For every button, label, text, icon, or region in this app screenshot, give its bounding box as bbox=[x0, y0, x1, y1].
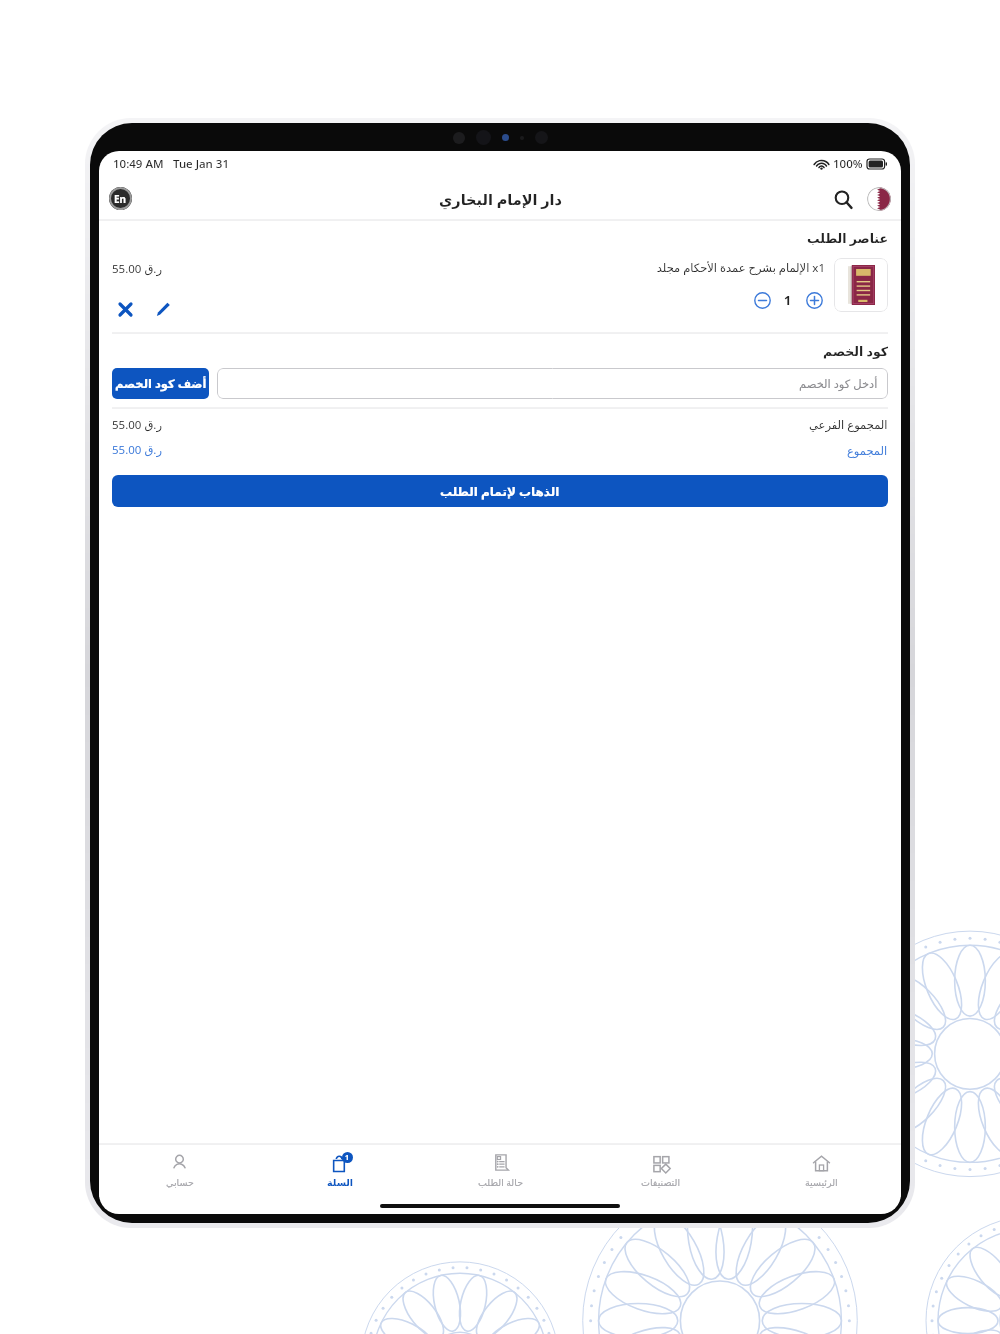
staticText: 10:49 AM bbox=[113, 156, 164, 172]
button[interactable]: حالة الطلب bbox=[421, 1145, 581, 1197]
staticText: أضف كود الخصم bbox=[115, 376, 207, 392]
button[interactable]: Remove item bbox=[112, 296, 138, 322]
staticText: 55.00 ر.ق bbox=[112, 417, 162, 433]
button[interactable]: Decrease quantity bbox=[751, 289, 773, 311]
button[interactable]: أضف كود الخصم bbox=[112, 368, 209, 399]
staticText: En bbox=[114, 192, 127, 206]
button[interactable]: التصنيفات bbox=[581, 1145, 741, 1197]
button[interactable]: Edit item bbox=[150, 296, 176, 322]
staticText: التصنيفات bbox=[641, 1177, 681, 1188]
staticText: كود الخصم bbox=[112, 343, 888, 360]
staticText: 55.00 ر.ق bbox=[112, 261, 162, 277]
button[interactable]: الرئيسية bbox=[741, 1145, 901, 1197]
button[interactable]: Switch language to English bbox=[109, 187, 132, 210]
staticText: Tue Jan 31 bbox=[173, 156, 229, 172]
staticText: حالة الطلب bbox=[478, 1176, 524, 1189]
staticText: حسابي bbox=[166, 1177, 194, 1188]
button[interactable]: حسابي bbox=[99, 1145, 260, 1197]
staticText: الإلمام بشرح عمدة الأحكام مجلد x1 bbox=[386, 260, 825, 276]
button[interactable]: 1 bbox=[260, 1145, 421, 1197]
staticText: 1 bbox=[345, 1153, 350, 1163]
staticText: السلة bbox=[327, 1177, 354, 1188]
staticText: الذهاب لإتمام الطلب bbox=[440, 483, 560, 499]
staticText: المجموع bbox=[847, 444, 888, 457]
button[interactable]: Product image bbox=[834, 258, 888, 312]
staticText: 1 bbox=[784, 292, 792, 309]
staticText: دار الإمام البخاري bbox=[439, 189, 562, 209]
button[interactable]: Increase quantity bbox=[803, 289, 825, 311]
staticText: أدخل كود الخصم bbox=[799, 376, 878, 392]
button[interactable]: Country Qatar bbox=[867, 187, 891, 211]
staticText: 55.00 ر.ق bbox=[112, 442, 162, 458]
staticText: المجموع الفرعي bbox=[809, 417, 888, 433]
button[interactable]: Search bbox=[830, 186, 856, 212]
button[interactable]: أدخل كود الخصم bbox=[217, 368, 888, 399]
staticText: الرئيسية bbox=[805, 1177, 838, 1188]
staticText: عناصر الطلب bbox=[112, 230, 888, 247]
button[interactable]: الذهاب لإتمام الطلب bbox=[112, 475, 888, 507]
staticText: 100% bbox=[833, 156, 863, 172]
